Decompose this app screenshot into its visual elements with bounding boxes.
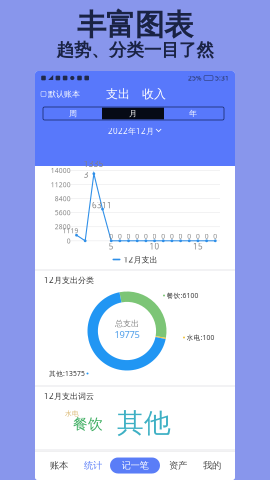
staticText: 餐饮:6100 (166, 291, 198, 300)
staticText: 0 (170, 232, 174, 241)
button[interactable]: 我的 (195, 451, 229, 480)
staticText: 周 (69, 109, 77, 118)
staticText: 记一笔 (121, 460, 148, 471)
staticText: 收入 (142, 87, 166, 101)
staticText: 11200 (51, 180, 71, 189)
staticText: 统计 (84, 460, 102, 471)
staticText: 5:31 (215, 74, 229, 82)
button[interactable]: 记一笔 (110, 457, 160, 473)
staticText: 资产 (169, 460, 187, 471)
staticText: 趋势、分类一目了然 (56, 39, 213, 61)
staticText: 其他:13575 (49, 369, 85, 378)
button[interactable]: 资产 (161, 451, 195, 480)
button[interactable]: 支出 (103, 86, 133, 102)
staticText: 19775 (114, 328, 139, 341)
button[interactable]: 年 (164, 107, 222, 120)
staticText: 0 (109, 232, 113, 241)
staticText: 默认账本 (48, 89, 80, 99)
staticText: 5 (109, 241, 114, 252)
staticText: 6311 (92, 200, 112, 210)
staticText: 0 (67, 236, 71, 245)
staticText: 13353 (84, 159, 104, 180)
staticText: 0 (135, 232, 139, 241)
staticText: 0 (118, 232, 122, 241)
staticText: 0 (213, 232, 217, 241)
button[interactable]: 周 (44, 107, 102, 120)
staticText: 0 (205, 232, 209, 241)
staticText: 8400 (55, 194, 71, 203)
staticText: 支出 (106, 87, 130, 101)
staticText: 12月支出 (123, 254, 157, 265)
staticText: 0 (153, 232, 157, 241)
staticText: 餐饮 (73, 415, 103, 433)
staticText: 15 (193, 241, 203, 252)
button[interactable]: 统计 (76, 451, 110, 480)
staticText: 12月支出词云 (44, 391, 94, 401)
staticText: 账本 (50, 460, 68, 471)
staticText: 水电:100 (186, 333, 214, 342)
staticText: 0 (179, 232, 183, 241)
button[interactable]: 2022年12月 (100, 125, 170, 137)
staticText: 2800 (55, 222, 71, 231)
button[interactable]: 账本 (42, 451, 76, 480)
staticText: 0 (161, 232, 165, 241)
staticText: 其他 (117, 407, 171, 439)
staticText: 丰富图表 (77, 7, 193, 43)
staticText: 14000 (51, 166, 71, 175)
staticText: 月 (129, 109, 137, 118)
staticText: 5600 (55, 208, 71, 217)
button[interactable]: 默认账本 (41, 87, 89, 101)
staticText: 0 (187, 232, 191, 241)
staticText: 10 (150, 241, 160, 252)
staticText: 我的 (203, 460, 221, 471)
staticText: 水电 (65, 409, 79, 418)
staticText: 25% (188, 74, 202, 82)
staticText: 0 (144, 232, 148, 241)
staticText: 总支出 (115, 319, 139, 328)
staticText: 12月支出分类 (44, 275, 94, 285)
button[interactable]: 月 (102, 108, 164, 119)
button[interactable]: 收入 (139, 86, 169, 102)
staticText: 年 (189, 109, 197, 118)
staticText: 0 (196, 232, 200, 241)
staticText: 1119 (62, 226, 78, 235)
staticText: 2022年12月 (108, 126, 154, 136)
staticText: 0 (127, 232, 131, 241)
